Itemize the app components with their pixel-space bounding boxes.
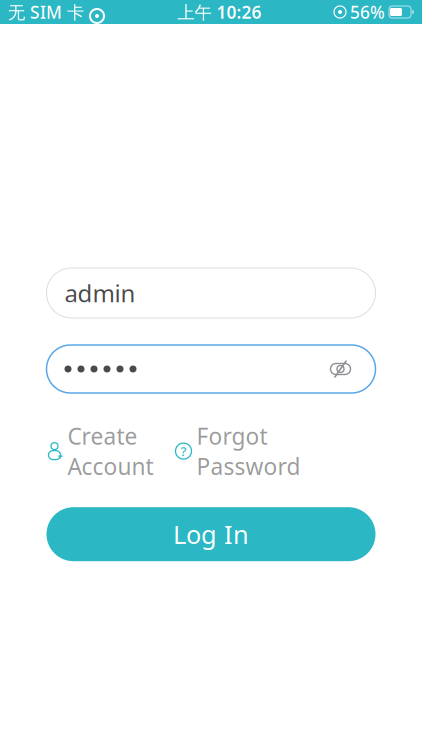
- button[interactable]: Log In: [46, 507, 375, 561]
- staticText: Log In: [173, 517, 249, 551]
- staticText: 上午 10:26: [177, 0, 261, 23]
- button[interactable]: Create Account: [46, 421, 153, 481]
- staticText: Create Account: [67, 421, 153, 481]
- staticText: 56%: [350, 0, 385, 23]
- staticText: Forgot Password: [196, 421, 300, 481]
- button[interactable]: Show password: [323, 354, 357, 384]
- staticText: admin: [64, 277, 135, 309]
- staticText: ?: [180, 442, 186, 460]
- button[interactable]: ?: [175, 421, 300, 481]
- staticText: 无 SIM 卡: [8, 0, 84, 23]
